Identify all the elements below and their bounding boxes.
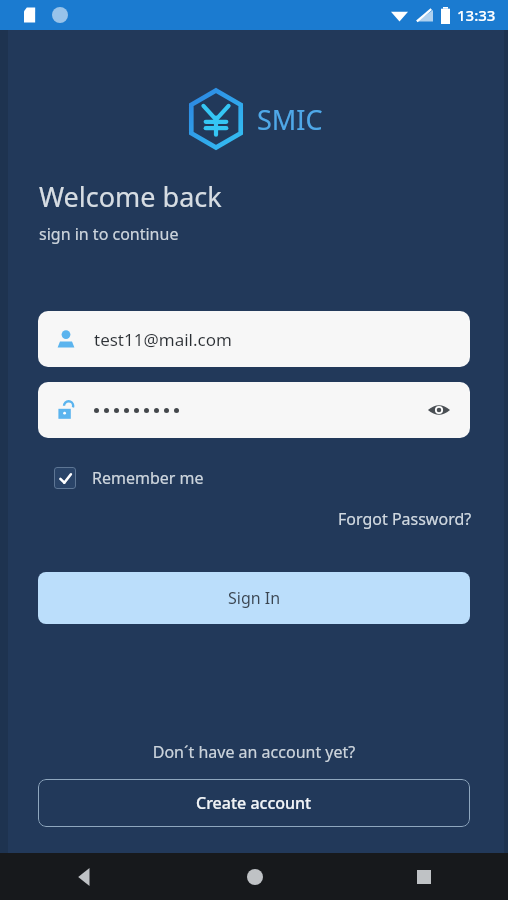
- staticText: Forgot Password?: [338, 508, 472, 530]
- staticText: Sign In: [228, 587, 281, 609]
- button[interactable]: Home: [170, 853, 339, 900]
- staticText: Welcome back: [39, 178, 222, 215]
- button[interactable]: test11@mail.com: [38, 311, 470, 367]
- staticText: 13:33: [457, 5, 496, 25]
- staticText: SMIC: [257, 101, 323, 138]
- button[interactable]: Recent apps: [339, 853, 508, 900]
- button[interactable]: Back: [0, 853, 170, 900]
- button[interactable]: Show password: [422, 393, 456, 427]
- staticText: Remember me: [92, 467, 204, 489]
- staticText: Don´t have an account yet?: [0, 741, 508, 763]
- button[interactable]: Remember me: [38, 458, 220, 498]
- button[interactable]: Forgot Password?: [328, 502, 482, 536]
- staticText: sign in to continue: [39, 223, 179, 245]
- staticText: test11@mail.com: [94, 328, 232, 351]
- button[interactable]: Sign In: [38, 572, 470, 624]
- button[interactable]: Create account: [38, 779, 470, 827]
- staticText: Create account: [196, 792, 312, 814]
- button[interactable]: Show password: [38, 382, 470, 438]
